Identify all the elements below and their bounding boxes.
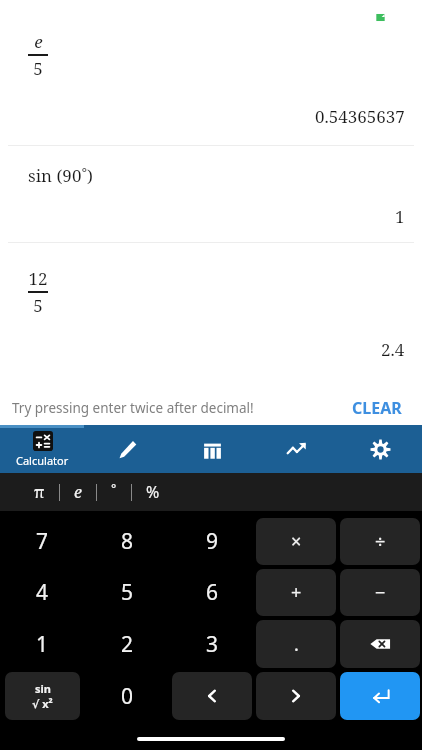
button[interactable]: 9 [170, 516, 254, 567]
staticText: Calculator [16, 453, 69, 468]
button[interactable]: Move right [256, 672, 336, 720]
staticText: 0 [121, 682, 134, 711]
button[interactable]: − [340, 569, 420, 616]
staticText: ÷ [375, 529, 386, 554]
staticText: 8 [121, 527, 134, 556]
button[interactable]: 6 [170, 567, 254, 618]
button[interactable]: % [132, 477, 174, 507]
button[interactable]: CLEAR [348, 393, 406, 423]
button[interactable]: π [20, 477, 59, 507]
staticText: e [74, 481, 82, 503]
button[interactable]: Calculator [0, 425, 85, 473]
staticText: 0.54365637 [315, 105, 405, 128]
button[interactable]: Settings [338, 425, 422, 473]
staticText: sin (90˚) [28, 164, 93, 187]
staticText: 2.4 [381, 338, 405, 361]
button[interactable]: 1 [0, 618, 85, 670]
button[interactable]: ˚ [97, 477, 131, 507]
button[interactable]: 5 [85, 567, 170, 618]
staticText: % [146, 481, 160, 503]
staticText: 7 [36, 527, 49, 556]
staticText: 5 [33, 294, 43, 317]
staticText: 6 [206, 578, 219, 607]
staticText: Try pressing enter twice after decimal! [12, 399, 348, 417]
button[interactable]: 3 [170, 618, 254, 670]
staticText: 1 [36, 630, 49, 659]
button[interactable]: ÷ [340, 518, 420, 565]
button[interactable]: × [256, 518, 336, 565]
staticText: . [294, 632, 299, 657]
button[interactable]: 4 [0, 567, 85, 618]
button[interactable]: Backspace [340, 620, 420, 668]
button[interactable]: Edit [85, 425, 170, 473]
staticText: 5 [121, 578, 134, 607]
staticText: 9 [206, 527, 219, 556]
button[interactable]: 2 [85, 618, 170, 670]
staticText: ˚ [111, 481, 117, 503]
button[interactable]: 8 [85, 516, 170, 567]
staticText: √ x² [32, 696, 53, 711]
button[interactable]: 7 [0, 516, 85, 567]
button[interactable]: e [60, 477, 96, 507]
staticText: 4 [36, 578, 49, 607]
staticText: 2 [121, 630, 134, 659]
button[interactable]: + [256, 569, 336, 616]
staticText: 3 [206, 630, 219, 659]
staticText: 5 [33, 57, 43, 80]
staticText: sin [35, 681, 51, 696]
button[interactable]: Enter [340, 672, 420, 720]
staticText: 1 [395, 205, 405, 228]
staticText: × [291, 529, 302, 554]
staticText: + [291, 580, 302, 605]
staticText: e [34, 30, 43, 53]
button[interactable]: Table [170, 425, 254, 473]
staticText: − [375, 580, 386, 605]
staticText: 12 [28, 267, 48, 290]
button[interactable]: Graph [254, 425, 338, 473]
button[interactable]: . [256, 620, 336, 668]
button[interactable]: Move left [172, 672, 252, 720]
staticText: CLEAR [352, 397, 402, 419]
button[interactable]: sin [5, 672, 80, 720]
button[interactable]: 0 [85, 670, 170, 722]
staticText: π [34, 481, 45, 503]
